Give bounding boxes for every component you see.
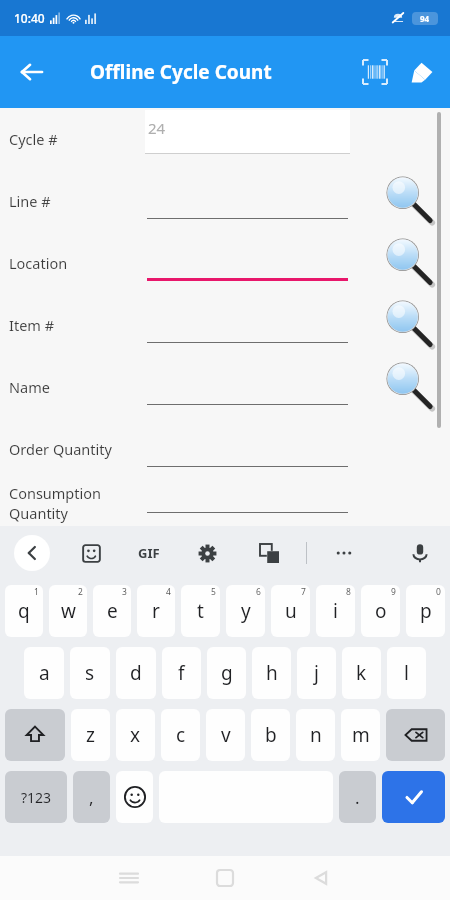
button[interactable]: Item # [0,294,450,356]
staticText: i [333,598,338,624]
button[interactable]: Name [0,356,450,418]
staticText: 4 [166,586,171,598]
button[interactable]: g [207,647,246,699]
button[interactable]: Clear [398,49,444,95]
staticText: 2 [78,586,83,598]
staticText: 3 [122,586,127,598]
button[interactable]: Settings [192,538,222,568]
button[interactable]: Consumption [0,480,450,526]
button[interactable]: Line # [0,170,450,232]
button[interactable]: Recent apps [108,857,150,899]
button[interactable]: z [71,709,110,761]
staticText: n [310,722,322,748]
button[interactable]: Expand toolbar [14,535,50,571]
staticText: k [356,660,367,686]
staticText: , [89,786,94,809]
staticText: Offline Cycle Count [90,59,272,85]
button[interactable]: o [361,585,400,637]
staticText: GIF [138,544,160,562]
staticText: Line # [9,191,51,211]
button[interactable]: x [116,709,155,761]
button[interactable]: r [137,585,175,637]
staticText: 9 [391,586,396,598]
staticText: c [176,722,186,748]
staticText: 1 [34,586,39,598]
staticText: 5 [211,586,216,598]
staticText: w [61,598,76,624]
staticText: 24 [148,118,166,138]
staticText: s [85,660,95,686]
staticText: d [130,660,142,686]
button[interactable]: . [339,771,376,823]
button[interactable]: w [49,585,87,637]
button[interactable]: f [162,647,201,699]
staticText: f [178,660,185,686]
button[interactable]: Shift [5,709,65,761]
button[interactable]: Search Line # [382,173,438,229]
button[interactable]: Search Item # [382,297,438,353]
staticText: ?123 [21,788,52,807]
button[interactable]: Backspace [386,709,445,761]
button[interactable]: s [70,647,110,699]
staticText: x [130,722,141,748]
button[interactable]: q [5,585,43,637]
staticText: t [197,598,204,624]
staticText: 8 [346,586,351,598]
staticText: e [107,598,118,624]
button[interactable]: p [406,585,445,637]
staticText: . [355,786,360,809]
button[interactable]: n [296,709,335,761]
button[interactable]: l [387,647,426,699]
button[interactable]: Search Location [382,235,438,291]
staticText: q [18,598,30,624]
button[interactable]: Back [8,48,56,96]
button[interactable]: y [226,585,265,637]
staticText: l [404,660,409,686]
staticText: Name [9,377,50,397]
staticText: 6 [256,586,261,598]
staticText: v [221,722,231,748]
button[interactable]: More options [329,538,359,568]
button[interactable]: u [271,585,310,637]
button[interactable]: Voice input [404,537,436,569]
button[interactable]: m [341,709,380,761]
button[interactable]: Search Name [382,359,438,415]
button[interactable]: Order Quantity [0,418,450,480]
button[interactable]: h [252,647,291,699]
button[interactable]: Emoji [116,771,153,823]
staticText: u [285,598,297,624]
staticText: 7 [301,586,306,598]
button[interactable]: c [161,709,200,761]
button[interactable]: Translate [254,538,284,568]
button[interactable]: Location [0,232,450,294]
staticText: z [86,722,95,748]
staticText: 0 [436,586,441,598]
button[interactable]: j [297,647,336,699]
staticText: Quantity [9,503,68,523]
button[interactable]: , [73,771,110,823]
staticText: o [375,598,387,624]
button[interactable]: Cycle # [0,108,450,170]
staticText: b [265,722,277,748]
button[interactable]: i [316,585,355,637]
button[interactable]: d [116,647,156,699]
button[interactable]: e [93,585,131,637]
button[interactable]: t [181,585,220,637]
button[interactable]: v [206,709,245,761]
staticText: m [352,722,370,748]
button[interactable]: Enter [382,771,445,823]
button[interactable]: GIF [138,544,160,562]
button[interactable]: ?123 [5,771,67,823]
button[interactable]: k [342,647,381,699]
button[interactable]: Scan barcode [352,49,398,95]
staticText: Location [9,253,68,273]
button[interactable]: Stickers [76,538,106,568]
staticText: r [152,598,160,624]
button[interactable]: b [251,709,290,761]
staticText: Cycle # [9,129,58,149]
button[interactable]: a [24,647,64,699]
button[interactable]: Home [204,857,246,899]
staticText: h [266,660,278,686]
button[interactable]: Back [300,857,342,899]
